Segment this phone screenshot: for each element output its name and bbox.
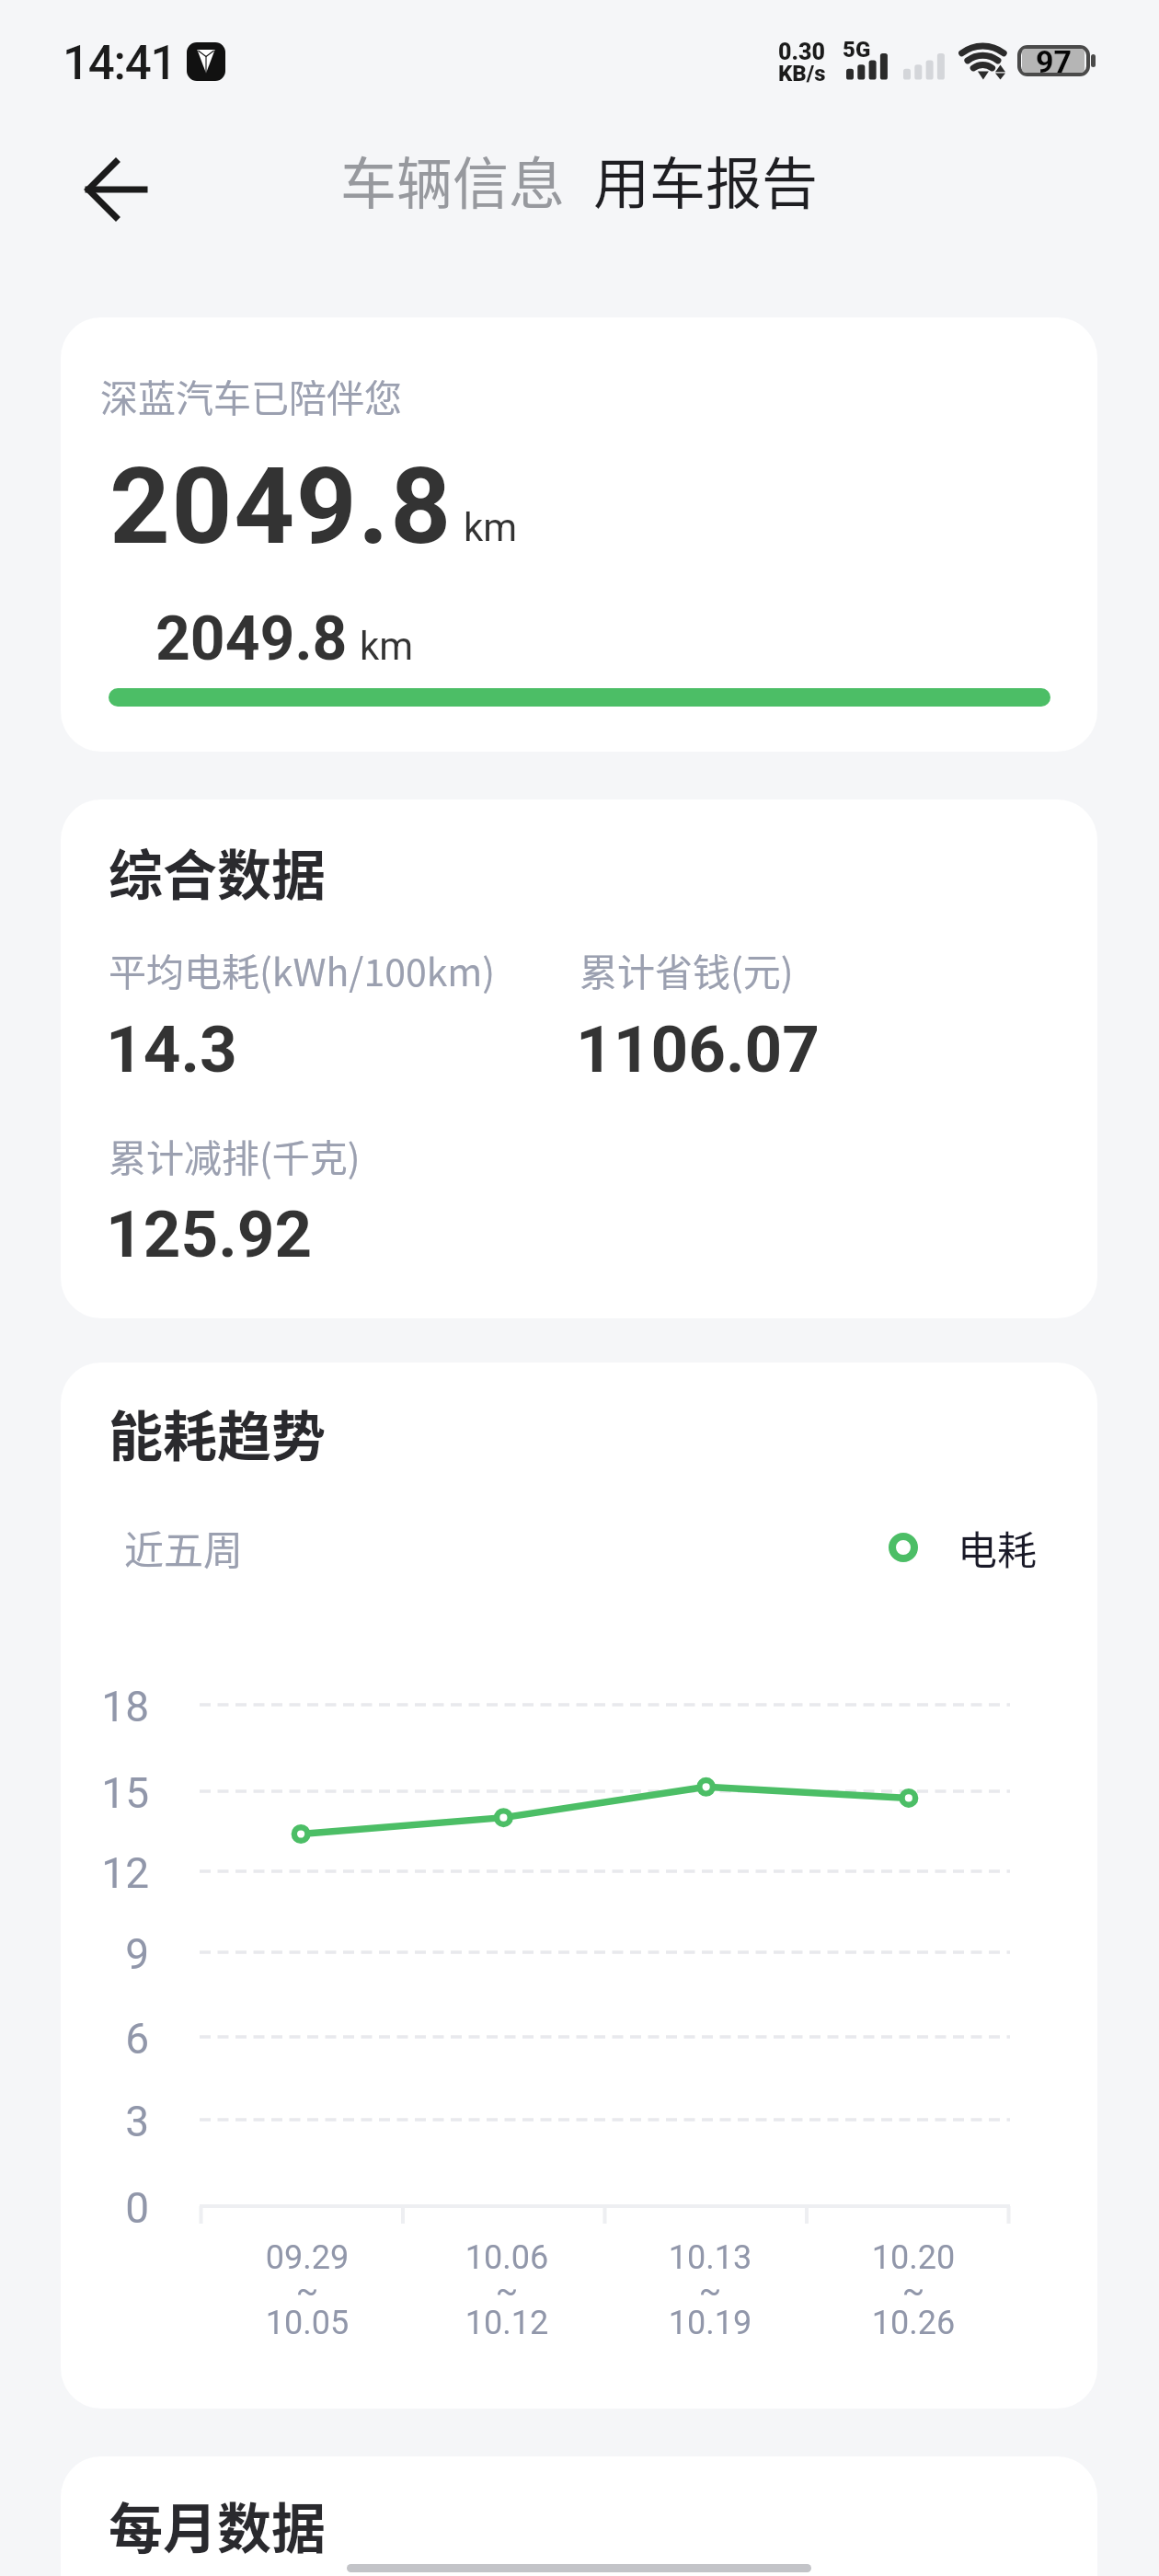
staticText: km [360, 624, 414, 669]
button[interactable]: 近五周 [109, 1507, 258, 1588]
staticText: 平均电耗(kWh/100km) [109, 942, 496, 996]
staticText: 5G [843, 37, 871, 63]
staticText: 12 [83, 1848, 149, 1898]
staticText: 累计省钱(元) [579, 942, 794, 996]
staticText: 10.06 ~ 10.12 [406, 2238, 608, 2341]
staticText: 每月数据 [109, 2486, 327, 2564]
staticText: 97 [1036, 43, 1073, 78]
staticText: 14:41 [63, 36, 177, 91]
staticText: 6 [83, 2014, 149, 2064]
button[interactable]: 电耗 [874, 1507, 1051, 1588]
staticText: 14.3 [106, 1011, 237, 1087]
staticText: km [464, 505, 518, 550]
staticText: KB/s [778, 61, 826, 86]
staticText: 累计减排(千克) [109, 1128, 361, 1182]
staticText: 125.92 [106, 1196, 313, 1272]
staticText: 2049.8 [155, 604, 348, 674]
staticText: 电耗 [958, 1519, 1037, 1576]
staticText: 用车报告 [593, 139, 819, 220]
staticText: 综合数据 [109, 833, 327, 911]
staticText: 0 [83, 2183, 149, 2233]
staticText: 18 [83, 1682, 149, 1731]
staticText: 能耗趋势 [109, 1394, 327, 1472]
staticText: 1106.07 [576, 1011, 820, 1087]
button[interactable]: 用车报告 [590, 128, 822, 231]
staticText: 3 [83, 2097, 149, 2146]
staticText: 9 [83, 1929, 149, 1979]
staticText: 车辆信息 [340, 139, 566, 220]
button[interactable]: Back [70, 144, 162, 236]
staticText: 09.29 ~ 10.05 [206, 2238, 408, 2341]
button[interactable]: 车辆信息 [337, 128, 569, 231]
staticText: 10.13 ~ 10.19 [609, 2238, 811, 2341]
staticText: 近五周 [124, 1519, 243, 1576]
staticText: 10.20 ~ 10.26 [812, 2238, 1015, 2341]
staticText: 深蓝汽车已陪伴您 [100, 368, 402, 422]
staticText: 0.30 [778, 39, 826, 65]
staticText: 2049.8 [109, 444, 453, 569]
staticText: 15 [83, 1768, 149, 1818]
